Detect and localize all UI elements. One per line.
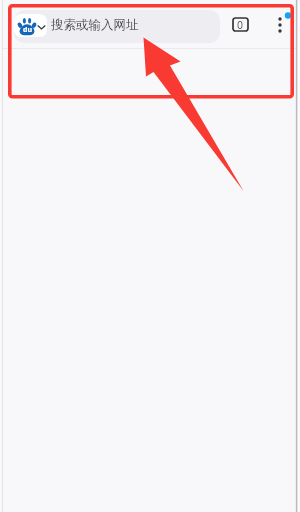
button[interactable]: Page content xyxy=(0,49,300,512)
staticText: 搜索或输入网址 xyxy=(51,17,139,33)
staticText: 0 xyxy=(237,18,244,32)
button[interactable]: Search engine Baidu xyxy=(14,14,47,37)
staticText: du xyxy=(23,25,32,35)
button[interactable]: Search engine Baidu xyxy=(14,10,220,43)
button[interactable]: More options xyxy=(267,11,293,37)
button[interactable]: Tabs, 0 open xyxy=(227,11,253,37)
